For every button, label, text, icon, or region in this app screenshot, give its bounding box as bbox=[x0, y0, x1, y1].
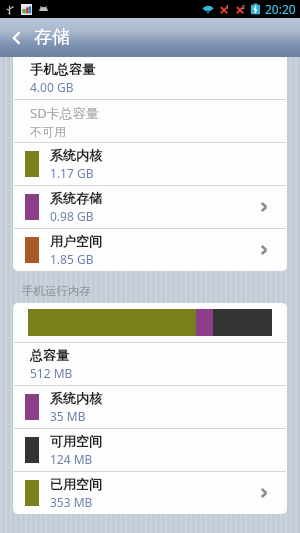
button[interactable]: 总容量 bbox=[13, 343, 287, 385]
staticText: 35 MB bbox=[50, 408, 86, 424]
staticText: 4.00 GB bbox=[30, 79, 74, 95]
staticText: 手机运行内存 bbox=[22, 284, 91, 298]
staticText: 系统内核 bbox=[50, 390, 102, 406]
staticText: 0.98 GB bbox=[50, 208, 94, 224]
staticText: 1.17 GB bbox=[50, 165, 94, 181]
button[interactable]: 系统内核 bbox=[13, 386, 287, 428]
button[interactable]: 系统内核 bbox=[13, 143, 287, 185]
button[interactable]: SD卡总容量 bbox=[13, 100, 287, 142]
staticText: 不可用 bbox=[30, 124, 66, 139]
button[interactable]: 用户空间 bbox=[13, 229, 287, 271]
staticText: 1.85 GB bbox=[50, 251, 94, 267]
button[interactable]: 返回 bbox=[0, 18, 34, 57]
staticText: 1 bbox=[226, 4, 229, 11]
staticText: 512 MB bbox=[30, 365, 73, 381]
staticText: 已用空间 bbox=[50, 476, 102, 492]
staticText: 可用空间 bbox=[50, 433, 102, 449]
staticText: 存储 bbox=[34, 26, 70, 49]
staticText: SD卡总容量 bbox=[30, 104, 99, 122]
button[interactable]: 可用空间 bbox=[13, 429, 287, 471]
staticText: 20:20 bbox=[265, 1, 296, 17]
staticText: 用户空间 bbox=[50, 233, 102, 249]
staticText: 系统内核 bbox=[50, 147, 102, 163]
button[interactable]: 手机总容量 bbox=[13, 57, 287, 99]
staticText: 353 MB bbox=[50, 494, 93, 510]
staticText: 124 MB bbox=[50, 451, 93, 467]
staticText: 2 bbox=[242, 4, 245, 11]
staticText: 总容量 bbox=[30, 347, 69, 363]
button[interactable]: 已用空间 bbox=[13, 472, 287, 514]
staticText: 手机总容量 bbox=[30, 61, 95, 77]
button[interactable]: 系统存储 bbox=[13, 186, 287, 228]
staticText: 系统存储 bbox=[50, 190, 102, 206]
